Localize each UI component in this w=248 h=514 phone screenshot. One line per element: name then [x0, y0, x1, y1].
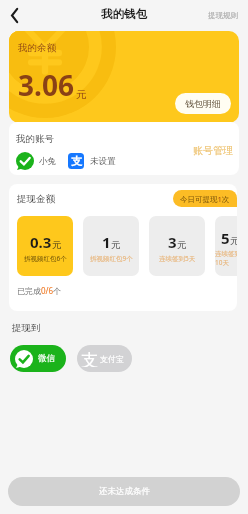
staticText: 已完成0/6个 [17, 285, 62, 296]
staticText: 支 [81, 350, 98, 367]
staticText: 3 [168, 232, 177, 252]
button[interactable]: Back [3, 4, 25, 26]
staticText: 提现规则 [208, 11, 238, 20]
staticText: 我的钱包 [101, 7, 147, 21]
staticText: 小兔 [39, 156, 56, 167]
button[interactable]: 账号管理 [191, 142, 235, 159]
staticText: 还未达成条件 [99, 486, 150, 497]
staticText: 5 [221, 228, 230, 248]
staticText: 元 [52, 239, 62, 251]
button[interactable]: 钱包明细 [175, 93, 231, 114]
staticText: 1 [102, 232, 111, 252]
staticText: 元 [76, 88, 87, 101]
button[interactable]: 提现规则 [206, 9, 240, 22]
staticText: 微信 [38, 353, 55, 364]
button[interactable]: 5 [215, 216, 237, 276]
button[interactable]: 还未达成条件 [8, 477, 240, 506]
button[interactable]: 1 [83, 216, 139, 276]
staticText: 拆视频红包9个 [90, 254, 133, 263]
staticText: 3.06 [18, 66, 74, 104]
staticText: 拆视频红包6个 [24, 254, 67, 263]
button[interactable]: 支 [77, 345, 132, 372]
staticText: 我的余额 [18, 42, 56, 54]
staticText: 支 [71, 154, 82, 168]
staticText: 我的账号 [16, 133, 54, 145]
staticText: 元 [111, 239, 121, 251]
staticText: 提现金额 [17, 193, 55, 205]
staticText: 支付宝 [100, 354, 124, 364]
button[interactable]: 0.3 [17, 216, 73, 276]
staticText: 连续签到10天 [215, 250, 237, 267]
staticText: 元 [177, 239, 187, 251]
staticText: 0.3 [30, 232, 52, 252]
button[interactable]: 今日可提现1次 [173, 190, 237, 207]
staticText: 连续签到5天 [159, 254, 196, 263]
staticText: 钱包明细 [185, 98, 221, 109]
staticText: 账号管理 [193, 144, 233, 157]
staticText: 元 [230, 235, 237, 247]
staticText: 未设置 [90, 156, 116, 167]
button[interactable]: 3 [149, 216, 205, 276]
staticText: 今日可提现1次 [180, 194, 230, 204]
staticText: 提现到 [12, 322, 41, 334]
button[interactable]: 微信 [10, 345, 66, 372]
